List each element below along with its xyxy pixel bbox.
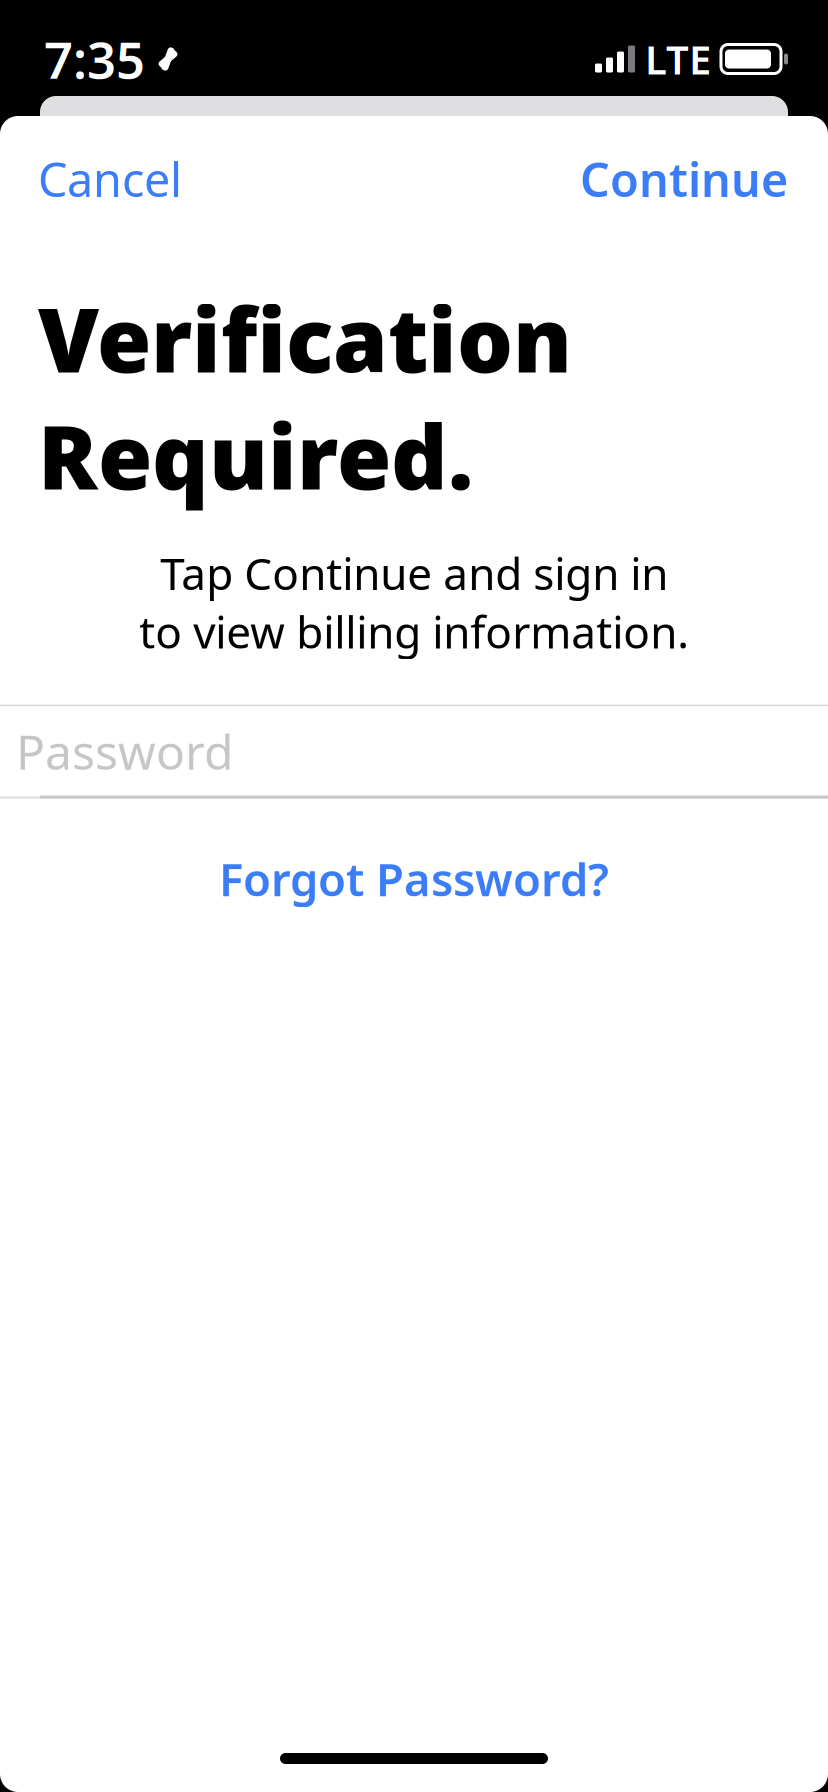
staticText: 7:35 — [44, 25, 145, 93]
staticText: Password — [16, 719, 234, 783]
staticText: Forgot Password? — [219, 849, 609, 909]
staticText: Cancel — [38, 148, 182, 210]
staticText: LTE — [645, 32, 711, 85]
staticText: Continue — [580, 148, 788, 210]
staticText: Verification Required. — [38, 280, 572, 514]
button[interactable]: Password — [0, 707, 828, 796]
button[interactable]: Continue — [574, 134, 794, 224]
staticText: Tap Continue and sign in to view billing… — [139, 544, 689, 661]
button[interactable]: Cancel — [32, 134, 188, 224]
button[interactable]: Forgot Password? — [0, 827, 828, 931]
